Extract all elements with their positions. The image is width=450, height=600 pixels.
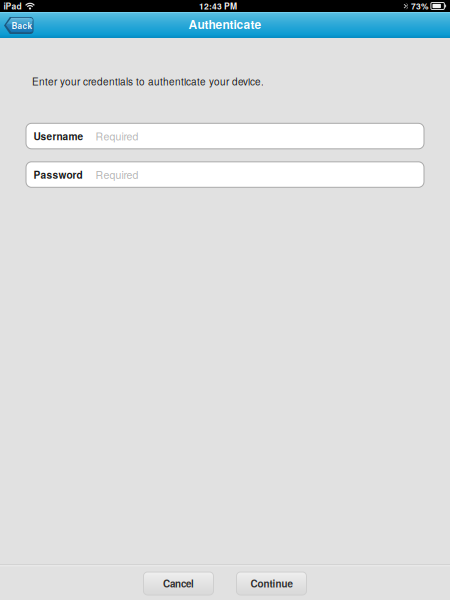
staticText: Back (11, 20, 32, 31)
staticText: Username (33, 129, 83, 143)
staticText: Password (33, 167, 82, 182)
staticText: Cancel (163, 576, 194, 590)
button[interactable]: Back (4, 17, 33, 34)
button[interactable]: Continue (236, 572, 306, 595)
staticText: Enter your credentials to authenticate y… (32, 74, 264, 88)
staticText: Required (95, 167, 138, 182)
staticText: Continue (250, 576, 292, 590)
staticText: 12:43 PM (199, 0, 237, 12)
button[interactable]: Cancel (143, 572, 213, 595)
staticText: iPad (3, 0, 21, 12)
staticText: Required (95, 128, 138, 144)
staticText: Authenticate (188, 15, 261, 33)
staticText: 73% (411, 0, 429, 12)
